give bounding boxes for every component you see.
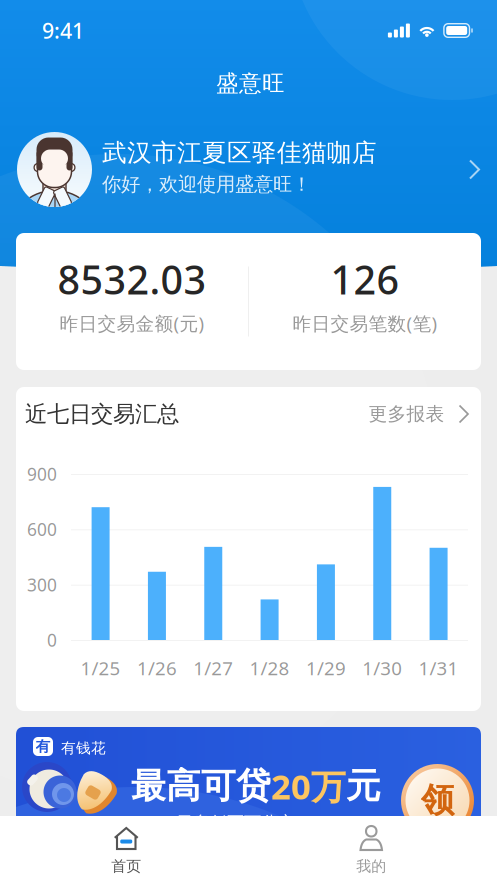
staticText: 近七日交易汇总	[25, 400, 179, 428]
staticText: 300	[27, 573, 57, 596]
staticText: 8532.03	[57, 253, 206, 305]
staticText: 1/27	[193, 656, 233, 680]
button[interactable]: 更多报表	[368, 402, 470, 425]
staticText: 1/25	[81, 656, 121, 680]
staticText: 有钱花	[61, 739, 106, 757]
staticText: 1/31	[419, 656, 459, 680]
staticText: 126	[330, 253, 399, 305]
button[interactable]: 有	[16, 727, 481, 816]
staticText: 昨日交易金额(元)	[59, 311, 204, 336]
staticText: 1/30	[362, 656, 402, 680]
staticText: 首页	[111, 857, 141, 875]
staticText: 领	[421, 780, 454, 821]
staticText: 1/26	[137, 656, 177, 680]
staticText: 更多报表	[368, 402, 444, 425]
staticText: 9:41	[42, 16, 84, 45]
staticText: 最高可贷	[131, 765, 271, 807]
button[interactable]: 武汉市江夏区驿佳猫咖店	[0, 106, 497, 233]
staticText: 武汉市江夏区驿佳猫咖店	[102, 138, 377, 168]
staticText: 日息低至万分之二	[176, 812, 312, 833]
staticText: 昨日交易笔数(笔)	[292, 311, 437, 336]
staticText: 盛意旺	[216, 70, 285, 97]
staticText: 元	[346, 765, 381, 807]
button[interactable]: 首页	[0, 816, 248, 883]
button[interactable]: 我的	[248, 816, 497, 883]
staticText: 我的	[356, 857, 386, 875]
staticText: 有	[35, 737, 50, 755]
staticText: 1/29	[306, 656, 346, 680]
staticText: 你好，欢迎使用盛意旺！	[102, 172, 311, 196]
staticText: 1/28	[250, 656, 290, 680]
staticText: 900	[27, 462, 57, 485]
staticText: 600	[27, 518, 57, 541]
staticText: 0	[47, 628, 57, 651]
staticText: 20万	[271, 763, 346, 809]
